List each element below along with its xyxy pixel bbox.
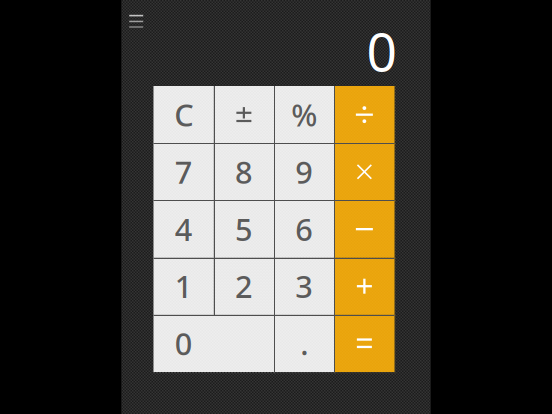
staticText: 0 [175,323,193,364]
button[interactable]: 7 [153,143,214,200]
button[interactable]: Plus or minus [214,86,274,143]
button[interactable]: 5 [214,200,274,258]
button[interactable]: 6 [274,200,334,258]
staticText: 7 [175,151,193,192]
button[interactable]: C [153,86,214,143]
button[interactable]: 2 [214,258,274,315]
staticText: 6 [295,209,313,249]
button[interactable]: Plus [334,258,394,315]
staticText: 8 [235,151,253,192]
button[interactable]: . [274,315,334,372]
staticText: 3 [295,266,313,306]
button[interactable]: % [274,86,334,143]
button[interactable]: Minus [334,200,394,258]
staticText: . [300,323,308,364]
button[interactable]: 8 [214,143,274,200]
staticText: 9 [295,151,313,192]
button[interactable]: Divide [334,86,394,143]
button[interactable]: 0 [153,315,274,372]
button[interactable]: Equals [334,315,394,372]
staticText: 2 [235,266,253,306]
button[interactable]: Multiply [334,143,394,200]
button[interactable]: 9 [274,143,334,200]
button[interactable]: 1 [153,258,214,315]
staticText: 1 [175,266,193,306]
staticText: 5 [235,209,253,249]
staticText: 4 [175,209,193,249]
button[interactable]: 4 [153,200,214,258]
staticText: 0 [366,15,397,86]
button[interactable]: Menu [121,0,157,42]
staticText: C [174,94,193,135]
staticText: % [291,94,317,135]
button[interactable]: 3 [274,258,334,315]
